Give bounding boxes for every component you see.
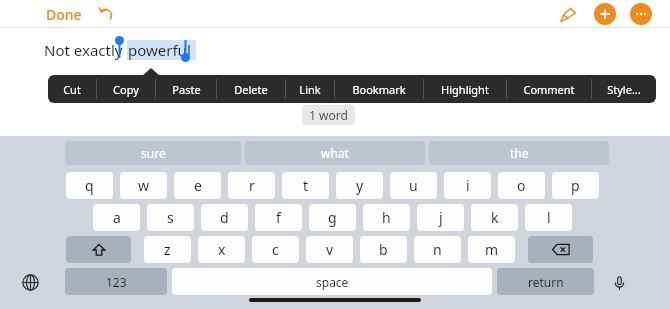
- button[interactable]: c: [252, 236, 299, 263]
- staticText: b: [379, 240, 388, 259]
- button[interactable]: return: [497, 268, 594, 295]
- staticText: e: [194, 176, 202, 195]
- button[interactable]: Add: [594, 3, 616, 25]
- button[interactable]: space: [172, 268, 492, 295]
- button[interactable]: z: [144, 236, 191, 263]
- staticText: 123: [106, 274, 127, 290]
- staticText: q: [85, 176, 94, 195]
- button[interactable]: Change keyboard: [18, 270, 42, 294]
- staticText: f: [276, 208, 281, 227]
- staticText: Not exactly: [44, 40, 127, 60]
- staticText: Style...: [607, 82, 641, 97]
- staticText: l: [547, 208, 551, 227]
- button[interactable]: Copy: [97, 75, 155, 103]
- staticText: u: [409, 176, 418, 195]
- button[interactable]: y: [336, 172, 383, 199]
- button[interactable]: j: [417, 204, 464, 231]
- button[interactable]: Bookmark: [335, 75, 423, 103]
- staticText: y: [356, 176, 364, 195]
- staticText: n: [433, 240, 442, 259]
- staticText: d: [220, 208, 229, 227]
- staticText: Cut: [63, 82, 81, 97]
- button[interactable]: Dictation: [608, 271, 630, 293]
- staticText: Comment: [523, 82, 575, 97]
- staticText: a: [113, 208, 121, 227]
- button[interactable]: a: [93, 204, 140, 231]
- staticText: w: [138, 176, 150, 195]
- staticText: return: [528, 274, 564, 290]
- button[interactable]: b: [360, 236, 407, 263]
- button[interactable]: Delete: [217, 75, 285, 103]
- button[interactable]: o: [498, 172, 545, 199]
- button[interactable]: e: [174, 172, 221, 199]
- button[interactable]: w: [120, 172, 167, 199]
- button[interactable]: u: [390, 172, 437, 199]
- staticText: 1 word: [309, 107, 348, 123]
- staticText: Highlight: [441, 82, 489, 97]
- button[interactable]: p: [552, 172, 599, 199]
- button[interactable]: m: [468, 236, 515, 263]
- button[interactable]: the: [429, 141, 609, 165]
- button[interactable]: 123: [65, 268, 167, 295]
- staticText: the: [510, 145, 529, 161]
- button[interactable]: q: [66, 172, 113, 199]
- button[interactable]: l: [525, 204, 572, 231]
- button[interactable]: Highlight: [424, 75, 506, 103]
- staticText: i: [466, 176, 470, 195]
- staticText: s: [167, 208, 174, 227]
- button[interactable]: x: [198, 236, 245, 263]
- button[interactable]: Paste: [156, 75, 216, 103]
- staticText: what: [321, 145, 349, 161]
- button[interactable]: f: [255, 204, 302, 231]
- button[interactable]: Undo: [96, 3, 118, 25]
- button[interactable]: Shift: [66, 236, 131, 263]
- staticText: k: [491, 208, 499, 227]
- button[interactable]: Style...: [592, 75, 656, 103]
- staticText: Link: [299, 82, 321, 97]
- button[interactable]: Done: [46, 5, 82, 24]
- staticText: Delete: [234, 82, 268, 97]
- button[interactable]: i: [444, 172, 491, 199]
- staticText: h: [382, 208, 391, 227]
- staticText: sure: [141, 145, 166, 161]
- button[interactable]: g: [309, 204, 356, 231]
- staticText: o: [517, 176, 526, 195]
- staticText: Paste: [172, 82, 201, 97]
- button[interactable]: Backspace: [528, 236, 593, 263]
- staticText: v: [326, 240, 334, 259]
- button[interactable]: t: [282, 172, 329, 199]
- staticText: space: [316, 274, 349, 290]
- button[interactable]: what: [245, 141, 425, 165]
- button[interactable]: n: [414, 236, 461, 263]
- button[interactable]: Markup: [556, 2, 580, 26]
- button[interactable]: k: [471, 204, 518, 231]
- button[interactable]: h: [363, 204, 410, 231]
- staticText: x: [218, 240, 226, 259]
- staticText: t: [303, 176, 309, 195]
- button[interactable]: Cut: [48, 75, 96, 103]
- button[interactable]: s: [147, 204, 194, 231]
- staticText: Copy: [113, 82, 139, 97]
- staticText: j: [439, 208, 443, 227]
- button[interactable]: Link: [286, 75, 334, 103]
- staticText: powerful: [128, 40, 195, 60]
- button[interactable]: r: [228, 172, 275, 199]
- staticText: m: [485, 240, 499, 259]
- staticText: Done: [46, 5, 82, 24]
- button[interactable]: sure: [65, 141, 241, 165]
- staticText: r: [249, 176, 255, 195]
- button[interactable]: More: [630, 3, 652, 25]
- button[interactable]: Comment: [507, 75, 591, 103]
- staticText: g: [328, 208, 337, 227]
- staticText: c: [272, 240, 279, 259]
- button[interactable]: d: [201, 204, 248, 231]
- button[interactable]: v: [306, 236, 353, 263]
- staticText: Bookmark: [352, 82, 406, 97]
- staticText: p: [571, 176, 580, 195]
- staticText: z: [164, 240, 171, 259]
